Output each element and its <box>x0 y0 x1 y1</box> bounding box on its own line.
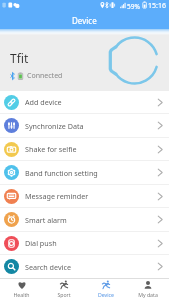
staticText: Connected <box>27 71 63 81</box>
button[interactable]: Device <box>85 279 127 300</box>
staticText: Add device <box>25 97 62 107</box>
button[interactable]: Shake for selfie <box>0 138 169 160</box>
button[interactable]: Health <box>0 279 43 300</box>
staticText: Tfit <box>10 50 29 66</box>
staticText: Synchronize Data <box>25 121 84 131</box>
staticText: Device <box>98 291 114 298</box>
button[interactable]: Message reminder <box>0 185 169 207</box>
staticText: 15:16 <box>148 1 166 11</box>
staticText: Search device <box>25 262 71 272</box>
staticText: Dial push <box>25 238 57 248</box>
staticText: Device <box>72 15 97 26</box>
staticText: 59% <box>127 2 140 11</box>
staticText: Shake for selfie <box>25 144 77 154</box>
button[interactable]: Dial push <box>0 232 169 254</box>
staticText: My data <box>138 291 158 298</box>
staticText: Message reminder <box>25 191 89 201</box>
button[interactable]: Search device <box>0 255 169 278</box>
button[interactable]: Synchronize Data <box>0 114 169 137</box>
button[interactable]: Band function setting <box>0 161 169 184</box>
button[interactable]: Sport <box>43 279 85 300</box>
staticText: Sport <box>57 291 71 298</box>
button[interactable]: Smart alarm <box>0 208 169 231</box>
staticText: Health <box>13 291 30 298</box>
button[interactable]: Add device <box>0 91 169 113</box>
button[interactable]: My data <box>127 279 169 300</box>
staticText: Smart alarm <box>25 215 67 225</box>
staticText: Band function setting <box>25 168 98 178</box>
